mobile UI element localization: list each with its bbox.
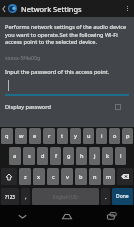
button[interactable]: c [47, 168, 59, 185]
button[interactable]: Back [0, 205, 44, 227]
button[interactable]: r [43, 128, 55, 144]
staticText: xxxxx-5f4a00g [5, 54, 41, 61]
button[interactable]: Recent apps [89, 205, 134, 227]
button[interactable]: , [21, 188, 30, 205]
staticText: h [80, 152, 84, 160]
button[interactable]: f [50, 147, 61, 165]
staticText: m [106, 173, 112, 181]
staticText: c [52, 173, 55, 181]
staticText: e [33, 132, 37, 140]
staticText: g [67, 152, 71, 160]
staticText: l [120, 152, 122, 160]
staticText: k [106, 152, 110, 160]
staticText: v [66, 173, 69, 181]
staticText: o [113, 132, 117, 140]
staticText: . [105, 193, 107, 201]
staticText: r [48, 132, 51, 140]
button[interactable]: d [37, 147, 48, 165]
staticText: a [13, 152, 17, 160]
staticText: Performs network settings of the audio d… [5, 23, 129, 45]
button[interactable]: q [1, 128, 13, 144]
button[interactable]: v [61, 168, 73, 185]
staticText: English (US) [53, 194, 78, 200]
staticText: q [5, 132, 9, 140]
staticText: t [61, 132, 64, 140]
button[interactable]: Delete [117, 168, 133, 185]
staticText: Network Settings [21, 4, 82, 14]
button[interactable]: j [89, 147, 100, 165]
button[interactable]: Done [112, 188, 133, 205]
button[interactable]: h [76, 147, 87, 165]
staticText: , [25, 193, 27, 201]
staticText: f [55, 152, 57, 160]
button[interactable]: e [29, 128, 41, 144]
staticText: ?123 [5, 194, 15, 200]
button[interactable]: Navigate up [0, 0, 8, 17]
button[interactable]: Shift [1, 168, 17, 185]
staticText: x [37, 173, 41, 181]
staticText: Input the password of this access point. [5, 68, 110, 76]
button[interactable]: y [70, 128, 81, 144]
button[interactable]: . [101, 188, 110, 205]
staticText: z [24, 173, 27, 181]
staticText: n [93, 173, 97, 181]
button[interactable]: i [96, 128, 107, 144]
button[interactable]: Display password [5, 103, 129, 111]
staticText: b [79, 173, 83, 181]
button[interactable]: s [23, 147, 35, 165]
button[interactable]: g [63, 147, 74, 165]
button[interactable]: ?123 [1, 188, 19, 205]
staticText: Done [116, 193, 129, 200]
button[interactable]: z [19, 168, 31, 185]
button[interactable]: English (US) [32, 188, 99, 205]
button[interactable]: k [102, 147, 113, 165]
staticText: w [19, 132, 24, 140]
button[interactable]: p [122, 128, 133, 144]
button[interactable]: t [57, 128, 68, 144]
button[interactable]: a [9, 147, 21, 165]
staticText: p [126, 132, 130, 140]
button[interactable]: w [15, 128, 27, 144]
staticText: j [94, 152, 96, 160]
button[interactable]: o [109, 128, 120, 144]
button[interactable]: b [75, 168, 87, 185]
staticText: y [74, 132, 77, 140]
button[interactable]: x [33, 168, 45, 185]
button[interactable]: n [89, 168, 101, 185]
button[interactable]: l [115, 147, 126, 165]
button[interactable]: Home [44, 205, 89, 227]
staticText: d [41, 152, 45, 160]
staticText: s [28, 152, 31, 160]
staticText: Display password [5, 103, 51, 111]
button[interactable]: m [103, 168, 115, 185]
staticText: i [101, 132, 103, 140]
button[interactable]: u [83, 128, 94, 144]
staticText: u [87, 132, 91, 140]
button[interactable]: More options [121, 0, 134, 17]
